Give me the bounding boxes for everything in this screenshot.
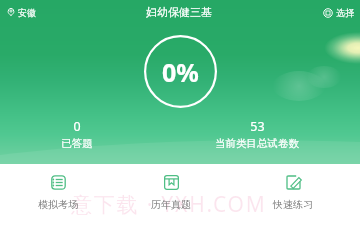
button[interactable]: 历年真题 (131, 175, 211, 211)
button[interactable]: 安徽 (4, 5, 39, 20)
staticText: 53 (250, 118, 265, 135)
staticText: 妇幼保健三基 (146, 5, 212, 19)
staticText: 意下载 · YXH.COM (71, 190, 267, 219)
staticText: 已答题 (61, 137, 93, 150)
button[interactable]: 快速练习 (253, 175, 333, 211)
staticText: 0 (73, 118, 81, 135)
staticText: 历年真题 (151, 198, 191, 211)
staticText: 安徽 (18, 7, 36, 18)
staticText: 0% (162, 55, 199, 89)
staticText: 快速练习 (273, 198, 313, 211)
staticText: 模拟考场 (38, 198, 78, 211)
button[interactable]: 选择 (320, 5, 357, 20)
button[interactable]: 模拟考场 (18, 175, 98, 211)
staticText: 选择 (336, 7, 354, 18)
staticText: 当前类目总试卷数 (215, 137, 299, 150)
